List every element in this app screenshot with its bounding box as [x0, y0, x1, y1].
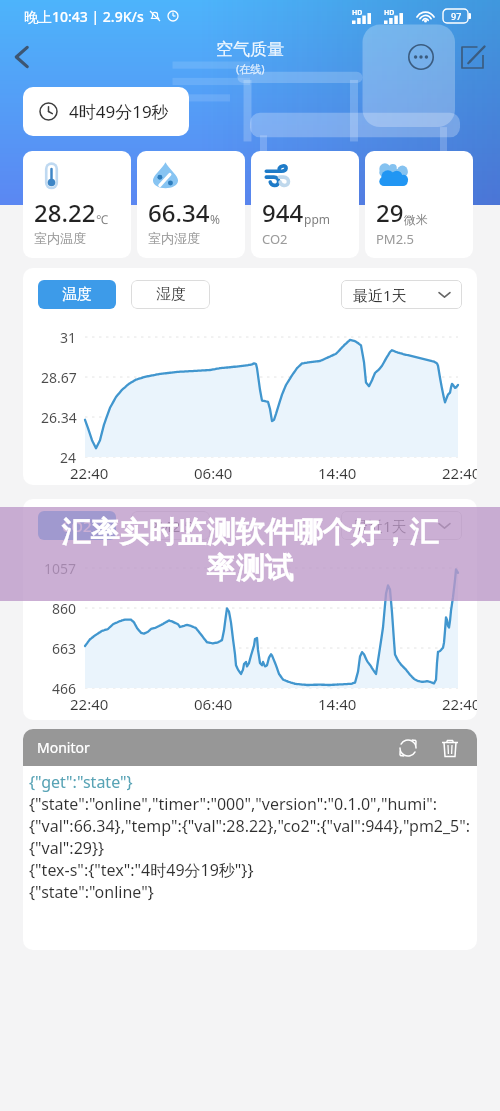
button[interactable]: 29	[365, 151, 473, 258]
button[interactable]: 最近1天	[341, 280, 462, 309]
staticText: 4时49分19秒	[69, 100, 169, 123]
button[interactable]: Refresh	[393, 733, 423, 763]
staticText: ppm	[304, 211, 330, 227]
staticText: HD	[384, 8, 395, 18]
staticText: 06:40	[194, 463, 233, 483]
staticText: 22:40	[442, 694, 477, 714]
staticText: (在线)	[236, 61, 265, 76]
staticText: 室内温度	[34, 230, 86, 246]
button[interactable]: PM2.5	[131, 511, 210, 540]
staticText: 最近1天	[353, 516, 407, 536]
staticText: 晚上10:43 | 2.9K/s	[24, 7, 144, 26]
staticText: 汇率实时监测软件哪个好，汇率测试	[56, 514, 444, 586]
button[interactable]: 最近1天	[341, 511, 462, 540]
staticText: 06:40	[194, 694, 233, 714]
staticText: ℃	[96, 211, 108, 227]
staticText: 温度	[62, 285, 92, 304]
button[interactable]: Back	[2, 37, 42, 77]
staticText: HD	[352, 8, 363, 18]
staticText: {"get":"state"}	[29, 771, 133, 793]
staticText: 22:40	[442, 463, 477, 483]
staticText: 湿度	[156, 285, 186, 304]
button[interactable]: CO2	[38, 511, 116, 540]
staticText: 1057	[44, 559, 77, 578]
staticText: 66.34	[148, 196, 210, 229]
staticText: 14:40	[318, 694, 357, 714]
staticText: 466	[52, 679, 77, 698]
button[interactable]: 温度	[38, 280, 116, 309]
staticText: {"val":29}}	[29, 837, 105, 859]
staticText: 22:40	[70, 463, 109, 483]
button[interactable]: 944	[251, 151, 359, 258]
staticText: 944	[262, 196, 304, 229]
staticText: 24	[60, 448, 77, 467]
staticText: 28.22	[34, 196, 96, 229]
staticText: Monitor	[37, 738, 90, 757]
staticText: 空气质量	[216, 39, 284, 60]
staticText: {"tex-s":{"tex":"4时49分19秒"}}	[29, 859, 254, 881]
staticText: CO2	[262, 230, 288, 248]
staticText: %	[210, 211, 220, 227]
staticText: 29	[376, 196, 404, 229]
staticText: 31	[60, 328, 77, 347]
staticText: PM2.5	[149, 516, 193, 536]
button[interactable]: Delete	[435, 733, 465, 763]
staticText: {"val":66.34},"temp":{"val":28.22},"co2"…	[29, 815, 471, 837]
staticText: {"state":"online"}	[29, 881, 154, 903]
staticText: CO2	[62, 516, 92, 536]
button[interactable]: More	[401, 37, 441, 77]
staticText: 22:40	[70, 694, 109, 714]
staticText: 室内湿度	[148, 230, 200, 246]
staticText: {"state":"online","timer":"000","version…	[29, 793, 438, 815]
button[interactable]: 4时49分19秒	[23, 87, 189, 136]
button[interactable]: 66.34	[137, 151, 245, 258]
button[interactable]: 湿度	[131, 280, 210, 309]
staticText: 最近1天	[353, 285, 407, 305]
button[interactable]: 28.22	[23, 151, 131, 258]
button[interactable]: Edit	[452, 37, 492, 77]
staticText: 26.34	[41, 408, 77, 427]
staticText: 14:40	[318, 463, 357, 483]
staticText: 28.67	[41, 368, 77, 387]
staticText: 微米	[404, 212, 428, 227]
staticText: 663	[52, 639, 77, 658]
staticText: PM2.5	[376, 230, 415, 248]
staticText: 860	[52, 599, 77, 618]
staticText: 97	[451, 10, 462, 22]
